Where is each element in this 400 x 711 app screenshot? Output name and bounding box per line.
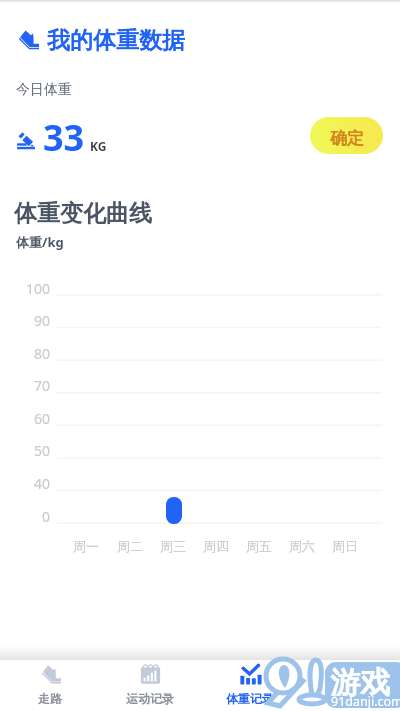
staticText: 80 [0, 344, 50, 363]
staticText: 60 [0, 409, 50, 428]
staticText: 运动记录 [126, 691, 174, 706]
staticText: 周一 [73, 538, 99, 554]
staticText: 走路 [38, 691, 62, 706]
button[interactable]: 我的体重数据 [16, 26, 185, 54]
staticText: 100 [0, 279, 50, 298]
staticText: 90 [0, 311, 50, 330]
staticText: 我的 [338, 691, 362, 706]
staticText: 确定 [330, 128, 364, 149]
staticText: 我的体重数据 [47, 26, 185, 54]
staticText: KG [90, 138, 107, 154]
staticText: 50 [0, 441, 50, 460]
button[interactable]: Wednesday weight bar [166, 497, 182, 524]
staticText: 周日 [332, 538, 358, 554]
staticText: 体重记录 [226, 691, 274, 706]
button[interactable]: 我的 [300, 660, 400, 711]
button[interactable]: 运动记录 [100, 660, 200, 711]
staticText: 游戏 [330, 664, 390, 702]
staticText: 周二 [117, 538, 143, 554]
button[interactable]: 体重记录 [200, 660, 300, 711]
button[interactable]: 确定 [310, 117, 383, 154]
staticText: 91danji.com [331, 693, 400, 710]
staticText: 33 [43, 113, 85, 162]
staticText: 40 [0, 474, 50, 493]
staticText: 今日体重 [16, 81, 72, 99]
staticText: 周六 [289, 538, 315, 554]
staticText: 周四 [203, 538, 229, 554]
button[interactable]: 走路 [0, 660, 100, 711]
staticText: 体重/kg [16, 233, 64, 251]
button[interactable]: Edit weight [15, 130, 36, 151]
staticText: 周三 [160, 538, 186, 554]
staticText: 70 [0, 376, 50, 395]
staticText: 体重变化曲线 [14, 199, 152, 228]
staticText: 0 [0, 507, 50, 526]
staticText: 周五 [246, 538, 272, 554]
